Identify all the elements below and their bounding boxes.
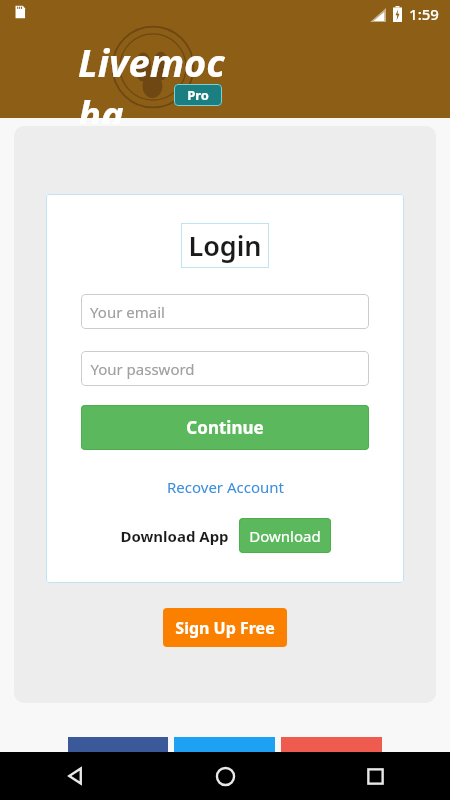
button[interactable]: Recover Account [161, 475, 290, 499]
button[interactable]: Your email [81, 294, 369, 329]
button[interactable]: Google [281, 737, 382, 753]
button[interactable]: Twitter [174, 737, 275, 753]
staticText: Your password [90, 359, 195, 379]
staticText: Login [188, 227, 262, 264]
staticText: Livemocha [78, 36, 233, 124]
staticText: Download [249, 526, 321, 546]
staticText: Recover Account [167, 477, 284, 497]
staticText: Download App [120, 526, 229, 546]
button[interactable]: Recents [300, 752, 450, 800]
staticText: Pro [187, 86, 209, 104]
button[interactable]: Livemocha [78, 36, 233, 124]
button[interactable]: Download [239, 518, 331, 553]
button[interactable]: Your password [81, 351, 369, 386]
button[interactable]: Pro [174, 84, 222, 106]
button[interactable]: Login [181, 223, 269, 268]
button[interactable]: Home [150, 752, 300, 800]
staticText: 1:59 [409, 4, 439, 24]
staticText: Your email [90, 302, 165, 322]
button[interactable]: Continue [81, 405, 369, 450]
staticText: Sign Up Free [175, 617, 275, 639]
button[interactable]: Facebook [68, 737, 168, 753]
button[interactable]: Back [0, 752, 150, 800]
button[interactable]: Sign Up Free [163, 608, 287, 647]
staticText: Continue [186, 416, 264, 439]
